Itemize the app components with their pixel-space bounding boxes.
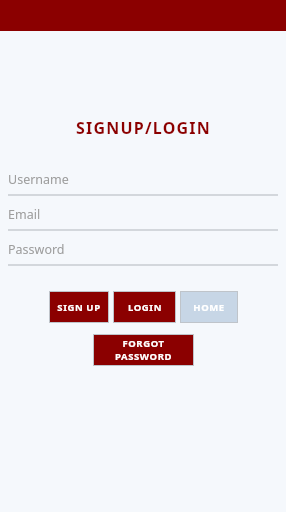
staticText: Password bbox=[8, 241, 65, 258]
button[interactable]: FORGOT PASSWORD bbox=[94, 335, 193, 365]
staticText: FORGOT PASSWORD bbox=[94, 337, 193, 363]
staticText: LOGIN bbox=[128, 301, 162, 314]
button[interactable]: HOME bbox=[181, 292, 237, 322]
staticText: SIGN UP bbox=[57, 301, 101, 314]
button[interactable]: LOGIN bbox=[114, 292, 175, 322]
button[interactable]: SIGN UP bbox=[50, 292, 108, 322]
staticText: Email bbox=[8, 206, 41, 223]
staticText: HOME bbox=[193, 301, 225, 314]
staticText: Username bbox=[8, 171, 69, 188]
staticText: SIGNUP/LOGIN bbox=[76, 117, 211, 139]
